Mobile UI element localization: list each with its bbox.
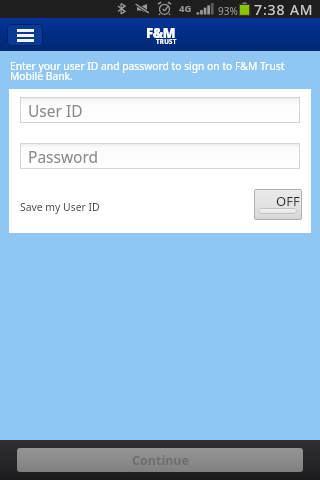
staticText: 93% [218, 4, 238, 18]
staticText: Enter your user ID and password to sign … [10, 59, 285, 83]
staticText: 4G [179, 2, 192, 15]
staticText: TRUST [156, 37, 177, 45]
button[interactable]: Continue [17, 448, 303, 472]
staticText: OFF [276, 192, 300, 210]
staticText: Password [28, 146, 99, 167]
staticText: F&M [146, 24, 176, 42]
button[interactable]: Password [20, 143, 300, 169]
button[interactable]: Save my User ID, off [254, 189, 302, 220]
button[interactable]: User ID [20, 97, 300, 123]
staticText: User ID [28, 100, 83, 121]
button[interactable]: Menu [7, 24, 43, 46]
staticText: Continue [132, 452, 189, 469]
staticText: 7:38 AM [254, 0, 314, 18]
staticText: Save my User ID [20, 200, 100, 214]
